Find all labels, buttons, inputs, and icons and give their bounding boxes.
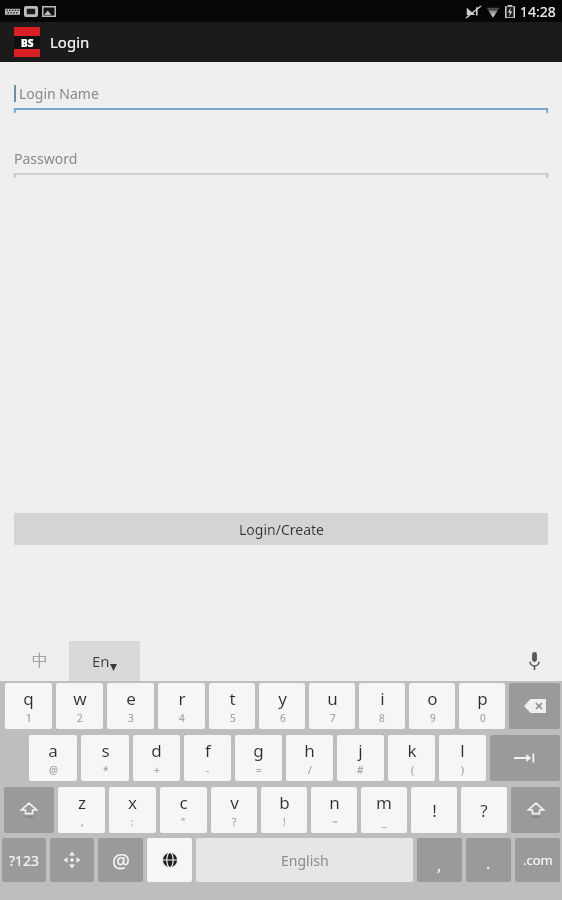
staticText: ?: [232, 815, 237, 829]
staticText: b: [279, 791, 290, 814]
button[interactable]: p: [459, 683, 505, 729]
staticText: En: [92, 651, 110, 671]
staticText: !: [432, 799, 437, 822]
button[interactable]: English: [196, 838, 413, 882]
staticText: r: [178, 687, 186, 710]
button[interactable]: q: [5, 683, 52, 729]
staticText: m: [376, 791, 392, 814]
staticText: 8: [379, 711, 385, 725]
button[interactable]: shift: [4, 787, 54, 833]
button[interactable]: s: [81, 735, 129, 781]
button[interactable]: w: [56, 683, 103, 729]
staticText: i: [380, 687, 385, 710]
button[interactable]: del: [509, 683, 560, 729]
button[interactable]: En: [69, 641, 140, 681]
staticText: g: [253, 739, 264, 762]
staticText: *: [103, 763, 109, 777]
staticText: 3: [128, 711, 134, 725]
staticText: -: [206, 763, 210, 777]
staticText: 7: [330, 711, 336, 725]
button[interactable]: x: [109, 787, 156, 833]
button[interactable]: e: [107, 683, 154, 729]
staticText: s: [101, 739, 110, 762]
staticText: u: [327, 687, 338, 710]
button[interactable]: b: [261, 787, 307, 833]
staticText: y: [278, 687, 287, 710]
button[interactable]: i: [359, 683, 405, 729]
button[interactable]: r: [158, 683, 205, 729]
staticText: Login: [50, 32, 90, 52]
button[interactable]: h: [286, 735, 333, 781]
staticText: ?123: [9, 851, 40, 870]
button[interactable]: f: [184, 735, 231, 781]
staticText: _: [382, 815, 387, 829]
button[interactable]: 中: [11, 641, 69, 681]
staticText: 中: [32, 651, 48, 671]
staticText: @: [49, 763, 58, 777]
button[interactable]: v: [211, 787, 257, 833]
staticText: Login/Create: [239, 520, 324, 539]
button[interactable]: dot com: [515, 838, 560, 882]
button[interactable]: a: [29, 735, 77, 781]
button[interactable]: t: [209, 683, 255, 729]
button[interactable]: n: [311, 787, 357, 833]
staticText: (: [411, 763, 414, 777]
staticText: +: [154, 763, 160, 777]
button[interactable]: ?: [461, 787, 507, 833]
staticText: p: [477, 687, 488, 710]
button[interactable]: Period: [466, 838, 511, 882]
staticText: 0: [480, 711, 486, 725]
button[interactable]: Change language: [147, 838, 192, 882]
button[interactable]: Arrows: [50, 838, 94, 882]
staticText: /: [308, 763, 312, 777]
staticText: .com: [523, 851, 553, 869]
button[interactable]: Symbols: [2, 838, 46, 882]
button[interactable]: Login Name: [14, 84, 548, 110]
button[interactable]: At sign: [98, 838, 143, 882]
staticText: #: [357, 763, 364, 777]
button[interactable]: o: [409, 683, 455, 729]
staticText: ?: [480, 799, 488, 822]
button[interactable]: d: [133, 735, 180, 781]
staticText: 4: [179, 711, 185, 725]
staticText: 14:28: [520, 2, 556, 21]
staticText: a: [48, 739, 58, 762]
button[interactable]: u: [309, 683, 355, 729]
button[interactable]: j: [337, 735, 384, 781]
staticText: q: [23, 687, 34, 710]
button[interactable]: Login/Create: [14, 513, 548, 545]
staticText: .: [486, 852, 491, 874]
staticText: !: [283, 815, 286, 829]
button[interactable]: shift: [511, 787, 560, 833]
button[interactable]: Comma: [417, 838, 462, 882]
button[interactable]: Voice input: [522, 649, 546, 673]
button[interactable]: l: [439, 735, 486, 781]
staticText: 9: [430, 711, 436, 725]
button[interactable]: !: [411, 787, 457, 833]
button[interactable]: m: [361, 787, 407, 833]
staticText: 1: [26, 711, 32, 725]
staticText: c: [179, 791, 188, 814]
staticText: j: [358, 739, 363, 762]
button[interactable]: c: [160, 787, 207, 833]
staticText: k: [407, 739, 417, 762]
staticText: t: [229, 687, 236, 710]
button[interactable]: tab: [490, 735, 560, 781]
button[interactable]: g: [235, 735, 282, 781]
staticText: 6: [280, 711, 286, 725]
staticText: w: [73, 687, 87, 710]
button[interactable]: k: [388, 735, 435, 781]
staticText: n: [329, 791, 340, 814]
staticText: English: [281, 851, 329, 870]
staticText: =: [256, 763, 262, 777]
staticText: 5: [230, 711, 236, 725]
staticText: x: [128, 791, 137, 814]
button[interactable]: Password: [14, 149, 548, 175]
button[interactable]: z: [58, 787, 105, 833]
staticText: ~: [332, 815, 338, 829]
staticText: ,: [81, 815, 84, 829]
staticText: v: [230, 791, 239, 814]
button[interactable]: y: [259, 683, 305, 729]
staticText: o: [427, 687, 438, 710]
staticText: e: [126, 687, 136, 710]
